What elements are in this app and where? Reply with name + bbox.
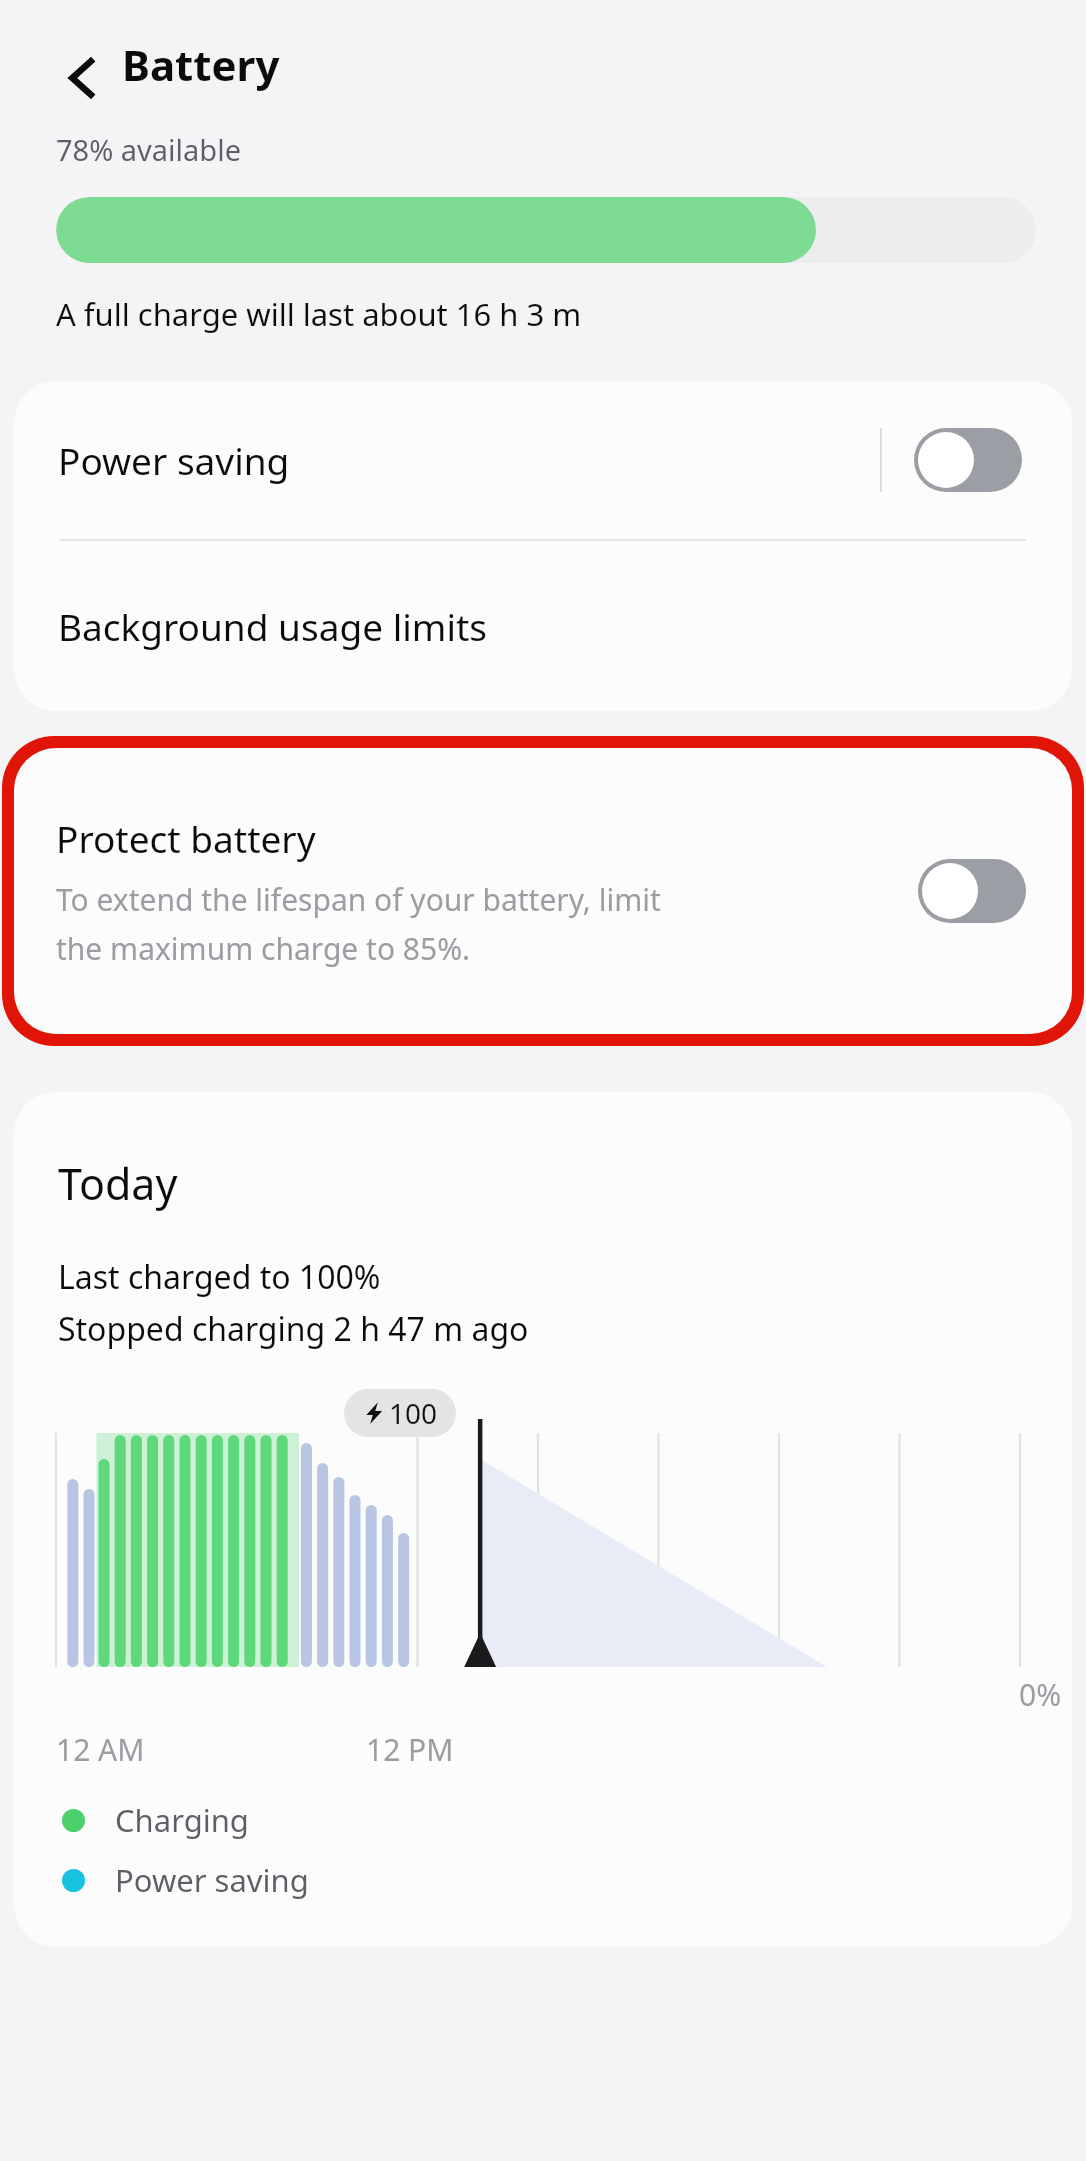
staticText: Power saving [58,435,880,485]
staticText: Last charged to 100% [58,1255,381,1299]
staticText: Background usage limits [58,601,488,651]
button[interactable]: Back [40,34,128,122]
staticText: the maximum charge to 85%. [56,928,471,969]
button[interactable]: Power saving [14,381,1072,539]
staticText: To extend the lifespan of your battery, … [56,879,661,920]
staticText: 100 [389,1394,438,1432]
staticText: 0% [1019,1674,1062,1715]
staticText: A full charge will last about 16 h 3 m [56,293,582,335]
staticText: Protect battery [56,813,316,863]
staticText: 12 PM [366,1729,454,1770]
button[interactable]: Background usage limits [14,541,1072,711]
button[interactable]: Protect battery [14,748,1072,1034]
staticText: Today [58,1154,178,1213]
button[interactable]: Toggle [914,428,1022,492]
staticText: Power saving [115,1859,309,1901]
staticText: Battery [122,36,280,93]
button[interactable]: Toggle [918,859,1026,923]
staticText: Stopped charging 2 h 47 m ago [58,1307,529,1351]
staticText: 78% available [56,130,241,169]
staticText: Charging [115,1799,249,1841]
staticText: 12 AM [56,1729,145,1770]
